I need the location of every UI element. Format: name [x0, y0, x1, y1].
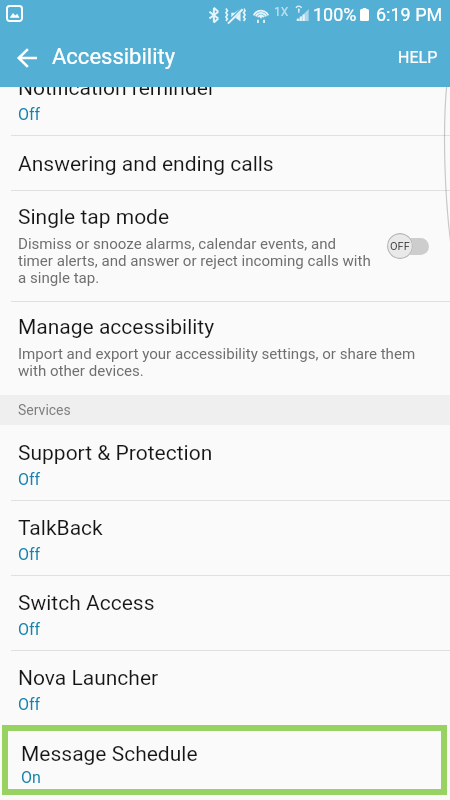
button[interactable]: Switch Access	[0, 576, 450, 650]
button[interactable]: Message Schedule	[8, 731, 441, 789]
staticText: OFF	[390, 240, 410, 253]
button[interactable]: Manage accessibility	[0, 302, 450, 395]
staticText: HELP	[398, 48, 438, 67]
staticText: Answering and ending calls	[18, 152, 274, 177]
staticText: 100%	[313, 4, 357, 25]
button[interactable]: HELP	[386, 34, 450, 81]
staticText: Off	[18, 105, 41, 124]
staticText: Single tap mode	[18, 205, 170, 230]
staticText: Switch Access	[18, 591, 155, 616]
staticText: Dismiss or snooze alarms, calendar event…	[18, 235, 371, 287]
button[interactable]: Support & Protection	[0, 425, 450, 500]
staticText: Off	[18, 470, 41, 489]
staticText: Off	[18, 695, 41, 714]
button[interactable]: TalkBack	[0, 501, 450, 575]
staticText: Off	[18, 545, 41, 564]
staticText: Accessibility	[52, 44, 176, 70]
staticText: TalkBack	[18, 516, 103, 541]
button[interactable]: Answering and ending calls	[0, 136, 450, 190]
button[interactable]: Back	[9, 40, 45, 76]
staticText: Off	[18, 620, 41, 639]
button[interactable]: Nova Launcher	[0, 651, 450, 725]
staticText: Support & Protection	[18, 441, 213, 466]
staticText: Services	[18, 402, 71, 418]
staticText: Notification reminder	[18, 76, 216, 101]
button[interactable]: Single tap mode	[0, 191, 450, 301]
staticText: Manage accessibility	[18, 315, 215, 340]
staticText: Nova Launcher	[18, 666, 159, 691]
staticText: 6:19 PM	[376, 4, 443, 25]
staticText: 1X	[274, 5, 289, 19]
staticText: Import and export your accessibility set…	[18, 345, 416, 380]
staticText: Message Schedule	[21, 742, 198, 767]
staticText: On	[21, 768, 41, 787]
